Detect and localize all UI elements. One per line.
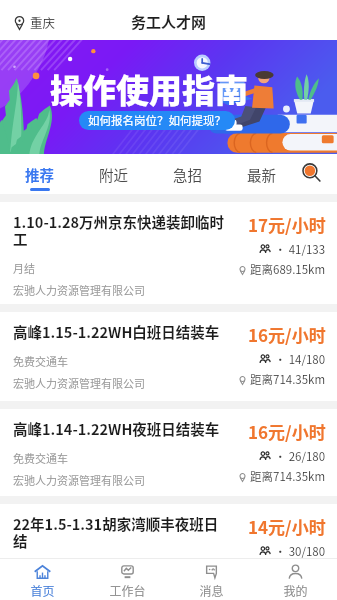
button[interactable]: 推荐 (6, 154, 72, 194)
button[interactable]: 附近 (80, 154, 146, 194)
staticText: 如何报名岗位？如何提现？ (88, 112, 226, 129)
staticText: 高峰1.14-1.22WH夜班日结装车 (13, 418, 220, 439)
button[interactable]: 高峰1.14-1.22WH夜班日结装车 (0, 409, 337, 496)
staticText: 距离714.35km (250, 371, 326, 388)
button[interactable]: 高峰1.15-1.22WH白班日结装车 (0, 312, 337, 401)
staticText: 免费交通车 (13, 450, 68, 466)
staticText: 宏驰人力资源管理有限公司 (13, 472, 145, 488)
staticText: 距离689.15km (250, 261, 326, 278)
staticText: 免费交通车 (13, 562, 68, 567)
button[interactable]: 首页 (0, 559, 85, 600)
staticText: 工作台 (109, 582, 146, 599)
button[interactable]: 消息 (169, 559, 253, 600)
button[interactable]: 重庆 (14, 13, 56, 31)
staticText: 月结 (13, 260, 35, 276)
staticText: 1.10-1.28万州京东快递装卸临时工 (13, 211, 227, 249)
staticText: 消息 (199, 582, 224, 599)
staticText: 宏驰人力资源管理有限公司 (13, 375, 145, 391)
button[interactable]: 急招 (154, 154, 220, 194)
staticText: 操作使用指南 (50, 65, 248, 113)
staticText: · 26/180 (272, 448, 326, 465)
staticText: 14元/小时 (248, 514, 326, 539)
staticText: 宏驰人力资源管理有限公司 (13, 282, 145, 298)
button[interactable]: 22年1.5-1.31胡家湾顺丰夜班日结 (0, 504, 337, 558)
staticText: 16元/小时 (248, 419, 326, 444)
button[interactable]: Search (294, 154, 330, 194)
button[interactable]: 1.10-1.28万州京东快递装卸临时工 (0, 202, 337, 304)
staticText: 16元/小时 (248, 322, 326, 347)
staticText: 重庆 (30, 13, 56, 31)
staticText: · 41/133 (272, 241, 326, 258)
staticText: · 30/180 (272, 543, 326, 560)
button[interactable]: 工作台 (85, 559, 169, 600)
staticText: 附近 (99, 164, 128, 185)
staticText: · 14/180 (272, 351, 326, 368)
staticText: 最新 (247, 164, 276, 185)
staticText: 高峰1.15-1.22WH白班日结装车 (13, 321, 220, 342)
button[interactable]: 我的 (253, 559, 337, 600)
button[interactable]: 最新 (228, 154, 294, 194)
staticText: 首页 (30, 582, 55, 599)
staticText: 距离714.35km (250, 563, 326, 568)
staticText: 我的 (283, 582, 308, 599)
staticText: 22年1.5-1.31胡家湾顺丰夜班日结 (13, 513, 227, 551)
staticText: 17元/小时 (248, 212, 326, 237)
staticText: 急招 (173, 164, 202, 185)
staticText: 务工人才网 (131, 11, 207, 33)
staticText: 距离714.35km (250, 468, 326, 485)
staticText: 推荐 (25, 164, 54, 185)
staticText: 免费交通车 (13, 353, 68, 369)
